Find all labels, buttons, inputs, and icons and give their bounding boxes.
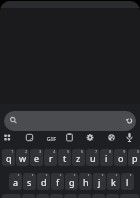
button[interactable]: p bbox=[128, 149, 140, 166]
button[interactable]: z bbox=[72, 149, 85, 166]
staticText: 0 bbox=[137, 149, 140, 154]
button[interactable] bbox=[22, 130, 38, 145]
button[interactable] bbox=[121, 112, 138, 129]
button[interactable]: d bbox=[37, 173, 50, 190]
staticText: e bbox=[34, 152, 40, 164]
staticText: d bbox=[41, 176, 47, 188]
button[interactable]: a bbox=[9, 173, 22, 190]
staticText: 3 bbox=[39, 149, 42, 154]
button[interactable] bbox=[92, 194, 105, 198]
button[interactable] bbox=[50, 194, 63, 198]
staticText: q bbox=[6, 152, 12, 164]
button[interactable]: k bbox=[107, 173, 120, 190]
staticText: p bbox=[132, 152, 138, 164]
button[interactable] bbox=[64, 194, 77, 198]
button[interactable]: w bbox=[16, 149, 29, 166]
button[interactable] bbox=[36, 194, 49, 198]
button[interactable]: h bbox=[79, 173, 92, 190]
staticText: 1 bbox=[11, 149, 14, 154]
staticText: 8 bbox=[109, 149, 112, 154]
button[interactable] bbox=[62, 130, 78, 145]
staticText: z bbox=[76, 152, 81, 164]
button[interactable]: i bbox=[100, 149, 113, 166]
button[interactable] bbox=[82, 130, 98, 145]
button[interactable]: f bbox=[51, 173, 64, 190]
staticText: u bbox=[90, 152, 96, 164]
staticText: o bbox=[118, 152, 124, 164]
button[interactable]: l bbox=[121, 173, 134, 190]
staticText: j bbox=[98, 176, 101, 188]
button[interactable]: g bbox=[65, 173, 78, 190]
staticText: t bbox=[63, 152, 67, 164]
button[interactable] bbox=[2, 194, 21, 198]
button[interactable]: t bbox=[58, 149, 71, 166]
button[interactable]: q bbox=[2, 149, 15, 166]
button[interactable] bbox=[120, 194, 139, 198]
staticText: g bbox=[69, 176, 75, 188]
button[interactable] bbox=[78, 194, 91, 198]
button[interactable]: u bbox=[86, 149, 99, 166]
staticText: i bbox=[105, 152, 108, 164]
button[interactable] bbox=[0, 130, 15, 145]
staticText: 2 bbox=[25, 149, 28, 154]
button[interactable]: o bbox=[114, 149, 127, 166]
staticText: w bbox=[19, 152, 27, 164]
button[interactable]: s bbox=[23, 173, 36, 190]
staticText: h bbox=[83, 176, 89, 188]
staticText: a bbox=[13, 176, 19, 188]
staticText: f bbox=[56, 176, 60, 188]
staticText: l bbox=[126, 176, 129, 188]
staticText: k bbox=[111, 176, 116, 188]
button[interactable] bbox=[106, 194, 119, 198]
staticText: 7 bbox=[95, 149, 98, 154]
staticText: 5 bbox=[67, 149, 70, 154]
button[interactable] bbox=[4, 111, 136, 131]
staticText: 6 bbox=[81, 149, 84, 154]
button[interactable] bbox=[104, 130, 120, 145]
button[interactable]: r bbox=[44, 149, 57, 166]
button[interactable] bbox=[122, 130, 138, 145]
staticText: s bbox=[27, 176, 32, 188]
button[interactable]: j bbox=[93, 173, 106, 190]
staticText: r bbox=[49, 152, 53, 164]
staticText: GIF bbox=[44, 135, 59, 142]
button[interactable]: e bbox=[30, 149, 43, 166]
staticText: 4 bbox=[53, 149, 56, 154]
staticText: 9 bbox=[123, 149, 126, 154]
button[interactable] bbox=[22, 194, 35, 198]
button[interactable] bbox=[44, 130, 60, 145]
